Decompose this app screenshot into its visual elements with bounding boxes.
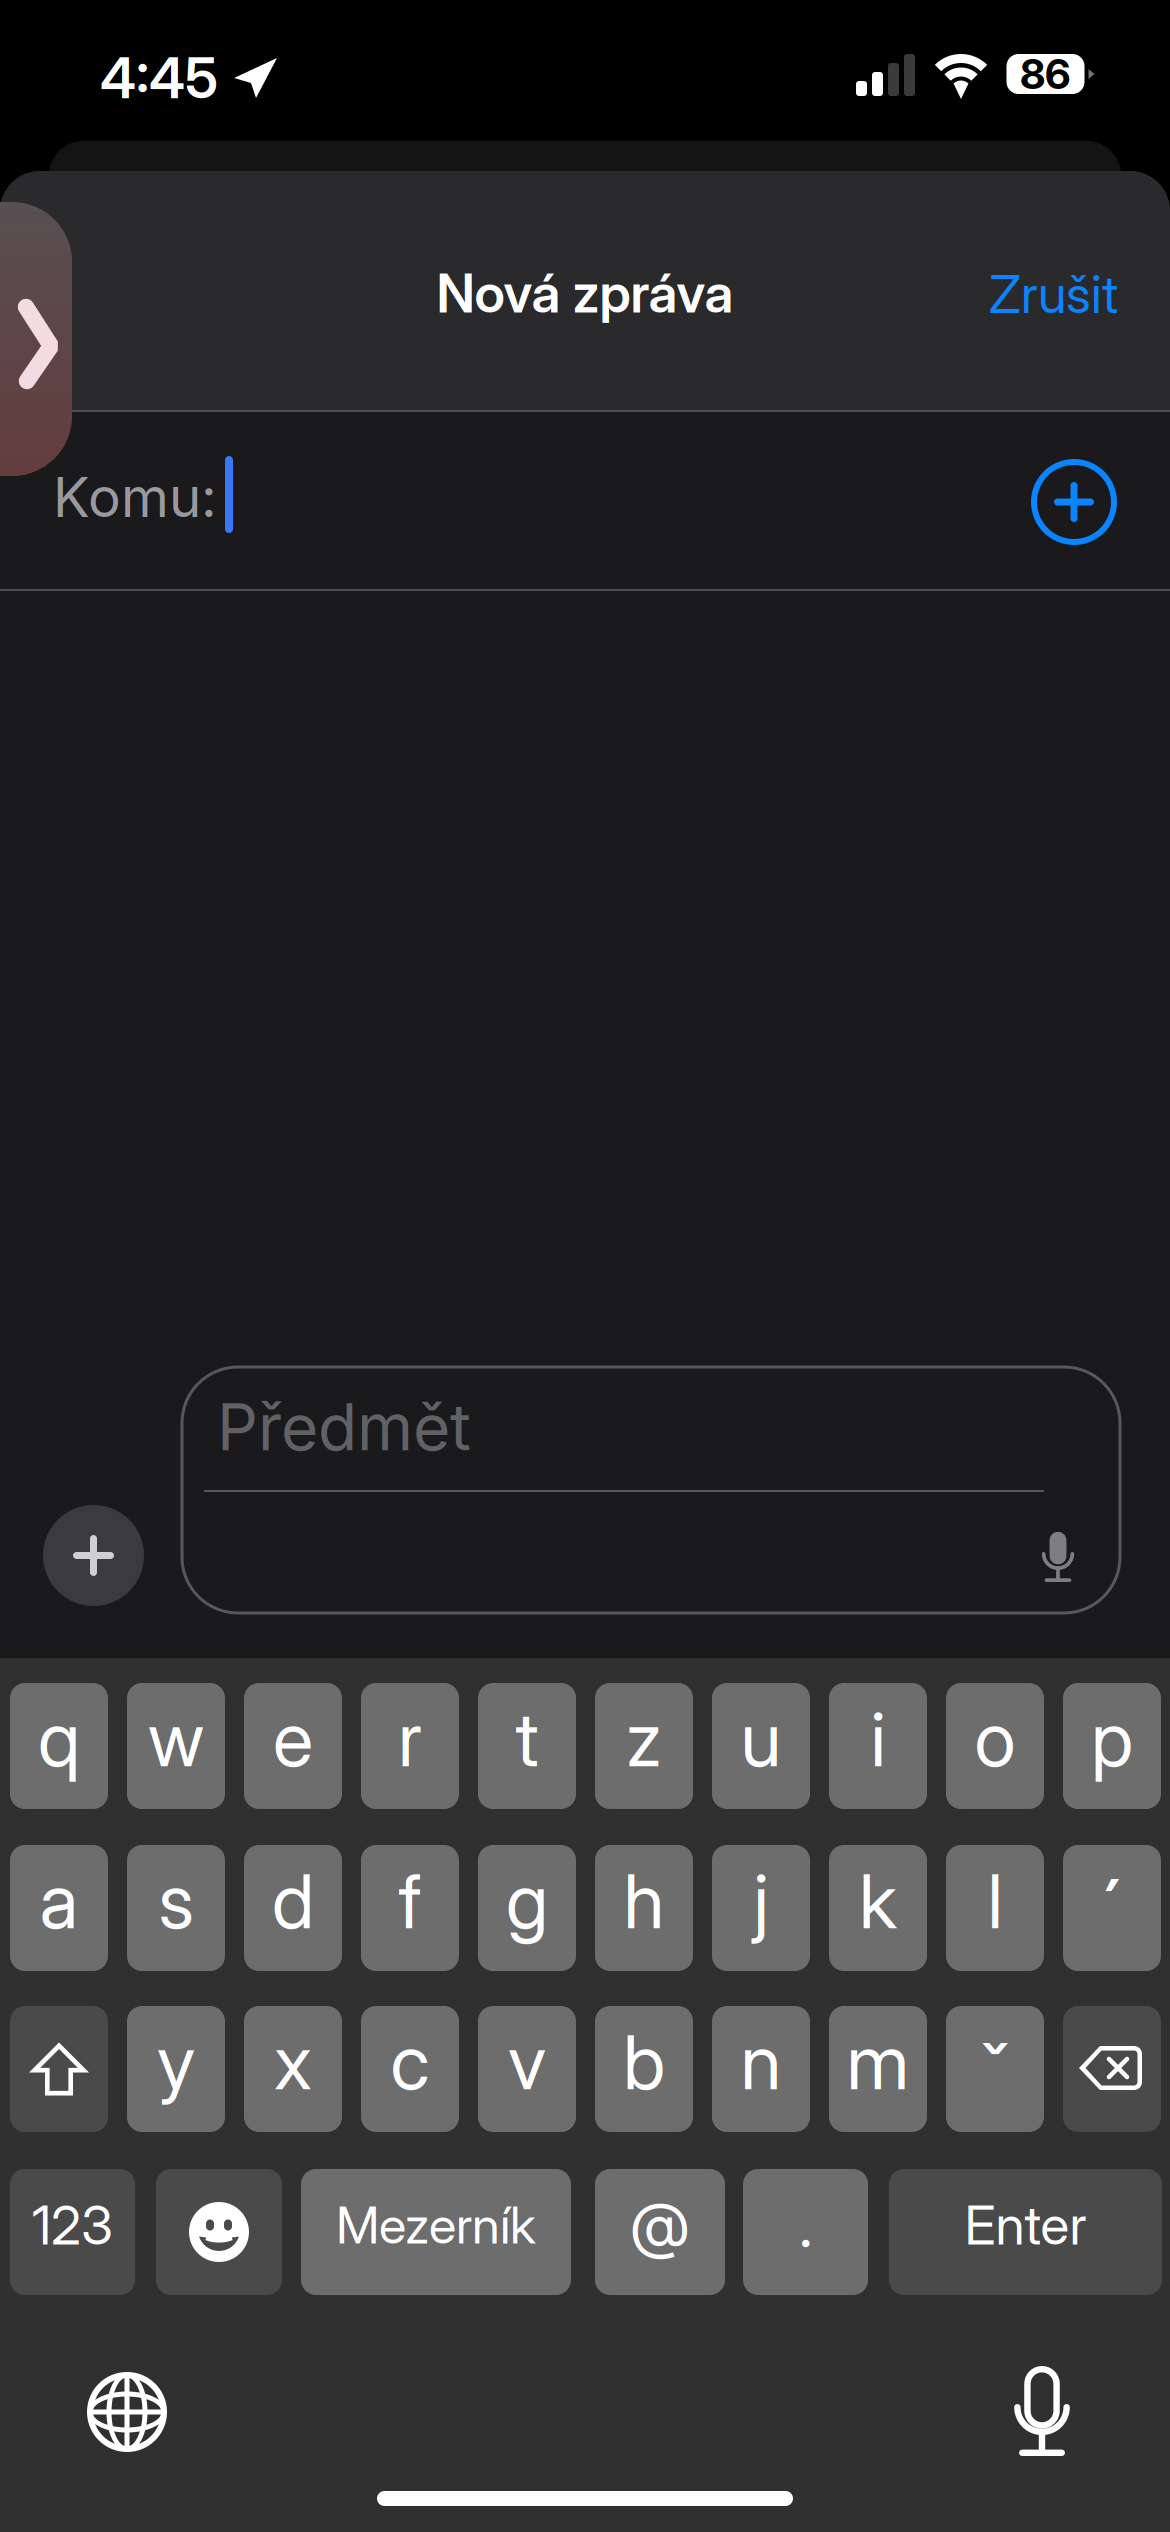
button[interactable]: e	[244, 1683, 342, 1809]
staticText: i	[870, 1694, 885, 1784]
staticText: a	[39, 1856, 78, 1946]
button[interactable]: Subject	[182, 1367, 1120, 1613]
staticText: Komu:	[53, 464, 217, 530]
staticText: d	[272, 1856, 314, 1946]
button[interactable]: s	[127, 1845, 225, 1971]
button[interactable]: t	[478, 1683, 576, 1809]
staticText: y	[157, 2017, 195, 2107]
button[interactable]: Mezerník	[301, 2169, 571, 2295]
staticText: Předmět	[217, 1388, 471, 1466]
button[interactable]: g	[478, 1845, 576, 1971]
staticText: 86	[1020, 49, 1071, 99]
button[interactable]: Dictation	[1011, 2366, 1073, 2456]
staticText: Mezerník	[336, 2194, 536, 2256]
staticText: r	[398, 1694, 422, 1784]
button[interactable]: d	[244, 1845, 342, 1971]
staticText: v	[508, 2017, 546, 2107]
staticText: o	[974, 1694, 1015, 1784]
button[interactable]: Delete	[1063, 2006, 1161, 2132]
button[interactable]: @	[595, 2169, 725, 2295]
button[interactable]: ´	[1063, 1845, 1161, 1971]
button[interactable]: Add attachment	[43, 1505, 144, 1606]
staticText: Enter	[964, 2193, 1086, 2257]
button[interactable]: m	[829, 2006, 927, 2132]
button[interactable]: f	[361, 1845, 459, 1971]
staticText: u	[740, 1694, 781, 1784]
staticText: n	[740, 2017, 781, 2107]
staticText: f	[398, 1856, 421, 1946]
staticText: .	[799, 2188, 812, 2262]
button[interactable]: p	[1063, 1683, 1161, 1809]
staticText: h	[623, 1856, 664, 1946]
button[interactable]: a	[10, 1845, 108, 1971]
button[interactable]: Enter	[889, 2169, 1162, 2295]
button[interactable]: v	[478, 2006, 576, 2132]
button[interactable]: i	[829, 1683, 927, 1809]
staticText: m	[846, 2017, 909, 2107]
staticText: ´	[1102, 1859, 1122, 1959]
button[interactable]: r	[361, 1683, 459, 1809]
staticText: 4:45	[100, 44, 218, 112]
button[interactable]: q	[10, 1683, 108, 1809]
button[interactable]: c	[361, 2006, 459, 2132]
button[interactable]: h	[595, 1845, 693, 1971]
staticText: q	[38, 1694, 80, 1784]
staticText: g	[506, 1856, 548, 1946]
staticText: j	[753, 1856, 768, 1946]
button[interactable]: x	[244, 2006, 342, 2132]
button[interactable]: k	[829, 1845, 927, 1971]
button[interactable]: ˇ	[946, 2006, 1044, 2132]
button[interactable]: u	[712, 1683, 810, 1809]
button[interactable]: Emoji	[156, 2169, 282, 2295]
staticText: @	[630, 2188, 690, 2262]
staticText: c	[390, 2017, 429, 2107]
staticText: Nová zpráva	[436, 261, 733, 325]
staticText: z	[626, 1694, 662, 1784]
button[interactable]: l	[946, 1845, 1044, 1971]
button[interactable]: Add recipient	[1034, 462, 1114, 542]
staticText: 123	[32, 2193, 113, 2257]
button[interactable]: Back	[0, 202, 72, 476]
staticText: w	[148, 1694, 204, 1784]
button[interactable]: y	[127, 2006, 225, 2132]
staticText: l	[987, 1856, 1002, 1946]
staticText: x	[274, 2017, 312, 2107]
staticText: Zrušit	[989, 262, 1118, 325]
staticText: b	[623, 2017, 665, 2107]
staticText: t	[515, 1694, 538, 1784]
button[interactable]: n	[712, 2006, 810, 2132]
staticText: k	[859, 1856, 897, 1946]
button[interactable]: b	[595, 2006, 693, 2132]
button[interactable]: .	[743, 2169, 868, 2295]
button[interactable]: o	[946, 1683, 1044, 1809]
button[interactable]: z	[595, 1683, 693, 1809]
button[interactable]: w	[127, 1683, 225, 1809]
button[interactable]: 123	[10, 2169, 135, 2295]
button[interactable]: j	[712, 1845, 810, 1971]
staticText: e	[273, 1694, 313, 1784]
button[interactable]: Zrušit	[950, 248, 1130, 340]
staticText: ˇ	[979, 2023, 1011, 2123]
staticText: p	[1091, 1694, 1133, 1784]
staticText: s	[158, 1856, 193, 1946]
button[interactable]: Shift	[10, 2006, 108, 2132]
button[interactable]: Next keyboard	[87, 2372, 167, 2452]
